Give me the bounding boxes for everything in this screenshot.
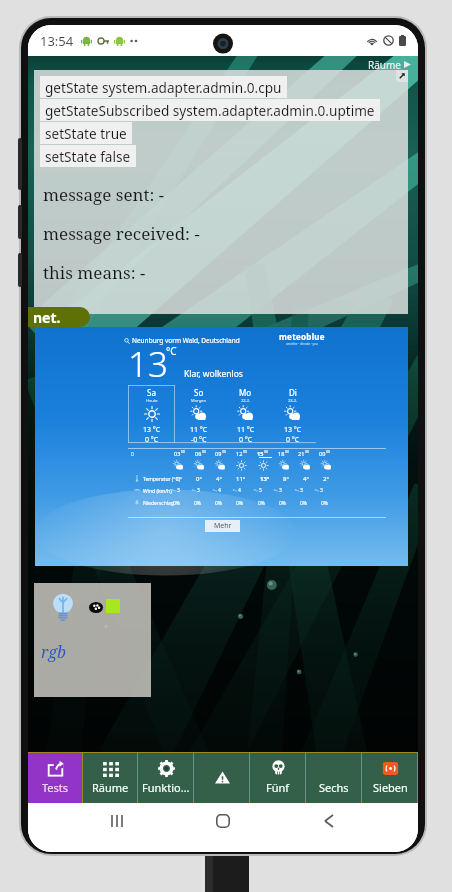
button[interactable]: So <box>175 385 222 443</box>
staticText: message received: - <box>43 222 200 245</box>
staticText: 00 <box>305 449 310 454</box>
staticText: 0% <box>279 500 287 507</box>
staticText: Niederschlag <box>143 500 174 507</box>
staticText: 3 <box>197 487 200 494</box>
staticText: 4° <box>216 475 223 483</box>
staticText: 0% <box>236 500 244 507</box>
button[interactable]: Mehr <box>205 520 240 532</box>
staticText: 00 <box>222 449 227 454</box>
staticText: 0 °C <box>239 435 253 443</box>
staticText: 4° <box>303 475 310 483</box>
staticText: Räume <box>368 58 401 70</box>
staticText: 13:54 <box>40 32 74 50</box>
button[interactable]: Recents <box>100 804 134 838</box>
staticText: getState system.adapter.admin.0.cpu <box>45 78 282 97</box>
staticText: Mo <box>239 387 252 398</box>
staticText: Funktio… <box>142 780 190 795</box>
button[interactable]: getState system.adapter.admin.0.cpu <box>40 76 287 98</box>
staticText: -0 °C <box>191 435 207 443</box>
button[interactable]: Vier <box>194 752 250 803</box>
staticText: rgb <box>41 641 67 663</box>
staticText: 4 <box>238 487 241 494</box>
button[interactable]: setState true <box>40 122 132 144</box>
staticText: Klar, wolkenlos <box>184 368 243 380</box>
staticText: 0% <box>173 500 181 507</box>
staticText: 00 <box>319 450 326 457</box>
staticText: 0° <box>196 475 203 483</box>
staticText: 00 <box>285 449 290 454</box>
staticText: 22.2. <box>241 398 251 403</box>
staticText: 15 <box>257 450 264 457</box>
button[interactable]: Fünf <box>250 752 306 803</box>
button[interactable]: Di <box>269 385 316 443</box>
staticText: 3 <box>279 487 282 494</box>
staticText: 09 <box>215 450 222 457</box>
staticText: weather · climate · you <box>286 342 318 346</box>
button[interactable]: Funktio… <box>138 752 194 803</box>
staticText: °C <box>166 344 177 358</box>
staticText: Wind (km/h) <box>143 488 172 495</box>
staticText: 00 <box>202 449 207 454</box>
button[interactable]: setState false <box>40 145 136 167</box>
staticText: 0 °C <box>145 435 159 443</box>
staticText: 13 °C <box>284 425 302 435</box>
staticText: getStateSubscribed system.adapter.admin.… <box>45 101 375 120</box>
staticText: 13 <box>128 340 168 388</box>
staticText: 0% <box>215 500 223 507</box>
staticText: net. <box>33 308 61 327</box>
button[interactable]: Mo <box>222 385 269 443</box>
staticText: 00 <box>264 449 269 454</box>
staticText: message sent: - <box>43 183 164 206</box>
staticText: 0% <box>300 500 308 507</box>
staticText: 8° <box>283 475 290 483</box>
staticText: Sa <box>147 387 156 398</box>
staticText: Sechs <box>319 780 349 795</box>
button[interactable]: Räume <box>83 752 138 803</box>
staticText: 13 °C <box>143 425 161 435</box>
staticText: 11 °C <box>190 425 208 435</box>
staticText: setState true <box>45 124 127 143</box>
button[interactable]: Back <box>312 804 346 838</box>
staticText: 4 <box>218 487 221 494</box>
button[interactable]: Sechs <box>306 752 362 803</box>
staticText: 06 <box>195 450 202 457</box>
staticText: 13° <box>260 475 270 483</box>
staticText: Di <box>289 387 297 398</box>
staticText: 23.2. <box>288 398 298 403</box>
staticText: Temperatur (°C) <box>143 476 181 483</box>
staticText: 3 <box>320 487 323 494</box>
staticText: 00 <box>181 449 186 454</box>
staticText: 11° <box>236 475 246 483</box>
staticText: 1° <box>176 475 183 483</box>
staticText: So <box>194 387 204 398</box>
button[interactable]: Home <box>206 804 240 838</box>
button[interactable]: rgb <box>34 583 151 697</box>
staticText: 5 <box>259 487 262 494</box>
button[interactable]: getStateSubscribed system.adapter.admin.… <box>40 99 380 121</box>
button[interactable]: net. <box>28 307 90 327</box>
staticText: Räume <box>92 780 129 795</box>
button[interactable]: Open in new window <box>396 70 408 82</box>
staticText: 00 <box>243 449 248 454</box>
staticText: Sieben <box>373 780 408 795</box>
button[interactable]: Sieben <box>362 752 418 803</box>
staticText: 18 <box>278 450 285 457</box>
staticText: Mehr <box>214 521 232 531</box>
staticText: 12 <box>236 450 243 457</box>
staticText: 3 <box>177 487 180 494</box>
button[interactable]: Sa <box>128 385 175 443</box>
staticText: Heute <box>146 398 158 403</box>
button[interactable]: Tests <box>28 752 83 803</box>
staticText: 11 °C <box>237 425 255 435</box>
staticText: 0 <box>131 451 134 458</box>
staticText: 3 <box>300 487 303 494</box>
staticText: 03 <box>174 450 181 457</box>
staticText: 0% <box>194 500 202 507</box>
staticText: 21 <box>298 450 305 457</box>
staticText: meteoblue <box>279 331 325 342</box>
staticText: Neunburg vorm Wald, Deutschland <box>132 336 240 345</box>
button[interactable]: Räume <box>368 58 411 70</box>
staticText: Tests <box>42 780 69 795</box>
button[interactable]: Neunburg vorm Wald, Deutschland <box>35 327 408 566</box>
staticText: setState false <box>45 147 131 166</box>
